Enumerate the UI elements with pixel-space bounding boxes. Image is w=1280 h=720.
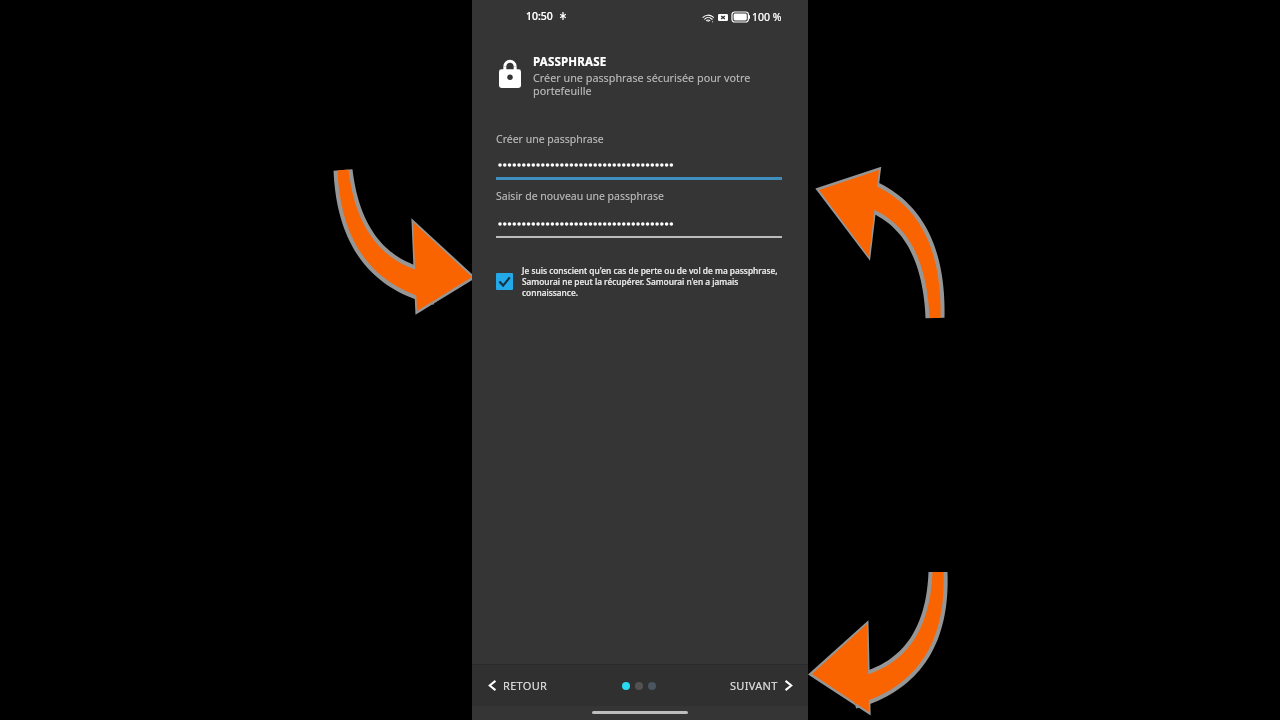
staticText: Je suis conscient qu'en cas de perte ou … — [522, 265, 782, 298]
staticText: SUIVANT — [730, 678, 778, 693]
button[interactable]: Je suis conscient qu'en cas de perte ou … — [496, 265, 782, 298]
staticText: Créer une passphrase sécurisée pour votr… — [533, 70, 774, 98]
button[interactable]: RETOUR — [489, 678, 548, 693]
staticText: PASSPHRASE — [533, 54, 607, 70]
staticText: 10:50 — [526, 9, 553, 23]
staticText: Saisir de nouveau une passphrase — [496, 189, 664, 203]
button[interactable]: SUIVANT — [730, 678, 792, 693]
staticText: RETOUR — [503, 678, 548, 693]
staticText: 100 % — [752, 10, 782, 24]
staticText: Créer une passphrase — [496, 132, 604, 146]
